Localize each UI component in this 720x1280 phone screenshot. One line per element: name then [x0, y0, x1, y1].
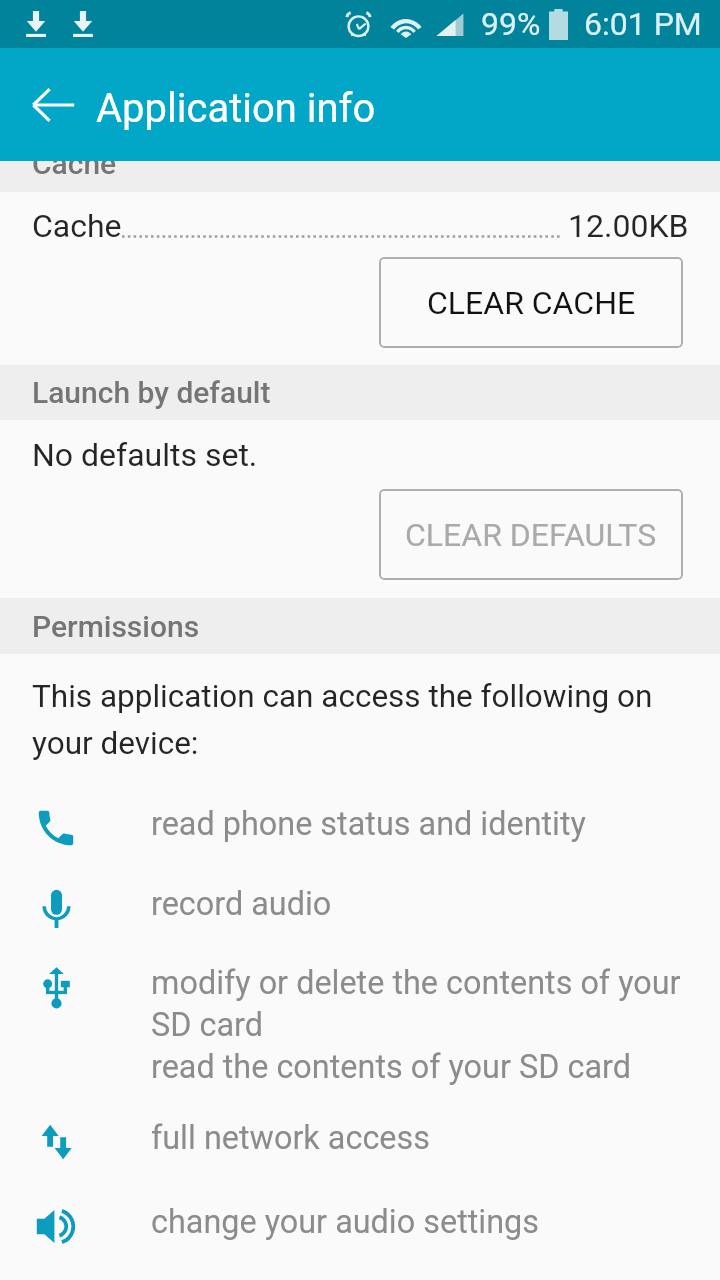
- staticText: read the contents of your SD card: [151, 1045, 631, 1087]
- button[interactable]: CLEAR DEFAULTS: [379, 489, 683, 580]
- button[interactable]: CLEAR CACHE: [379, 257, 683, 348]
- staticText: record audio: [151, 882, 332, 924]
- button[interactable]: Back: [20, 71, 88, 139]
- staticText: Permissions: [32, 609, 200, 644]
- staticText: Launch by default: [32, 375, 271, 410]
- staticText: 99%: [481, 5, 541, 43]
- staticText: 6:01 PM: [584, 5, 702, 43]
- staticText: modify or delete the contents of your SD…: [151, 961, 694, 1045]
- staticText: No defaults set.: [32, 436, 258, 474]
- staticText: Cache: [32, 161, 117, 177]
- staticText: full network access: [151, 1116, 430, 1158]
- staticText: Cache: [32, 207, 122, 245]
- staticText: Application info: [96, 85, 376, 132]
- staticText: CLEAR CACHE: [427, 284, 636, 322]
- staticText: read phone status and identity: [151, 802, 586, 844]
- staticText: This application can access the followin…: [32, 670, 680, 764]
- staticText: 12.00KB: [568, 207, 689, 245]
- staticText: CLEAR DEFAULTS: [405, 516, 657, 554]
- staticText: change your audio settings: [151, 1200, 540, 1242]
